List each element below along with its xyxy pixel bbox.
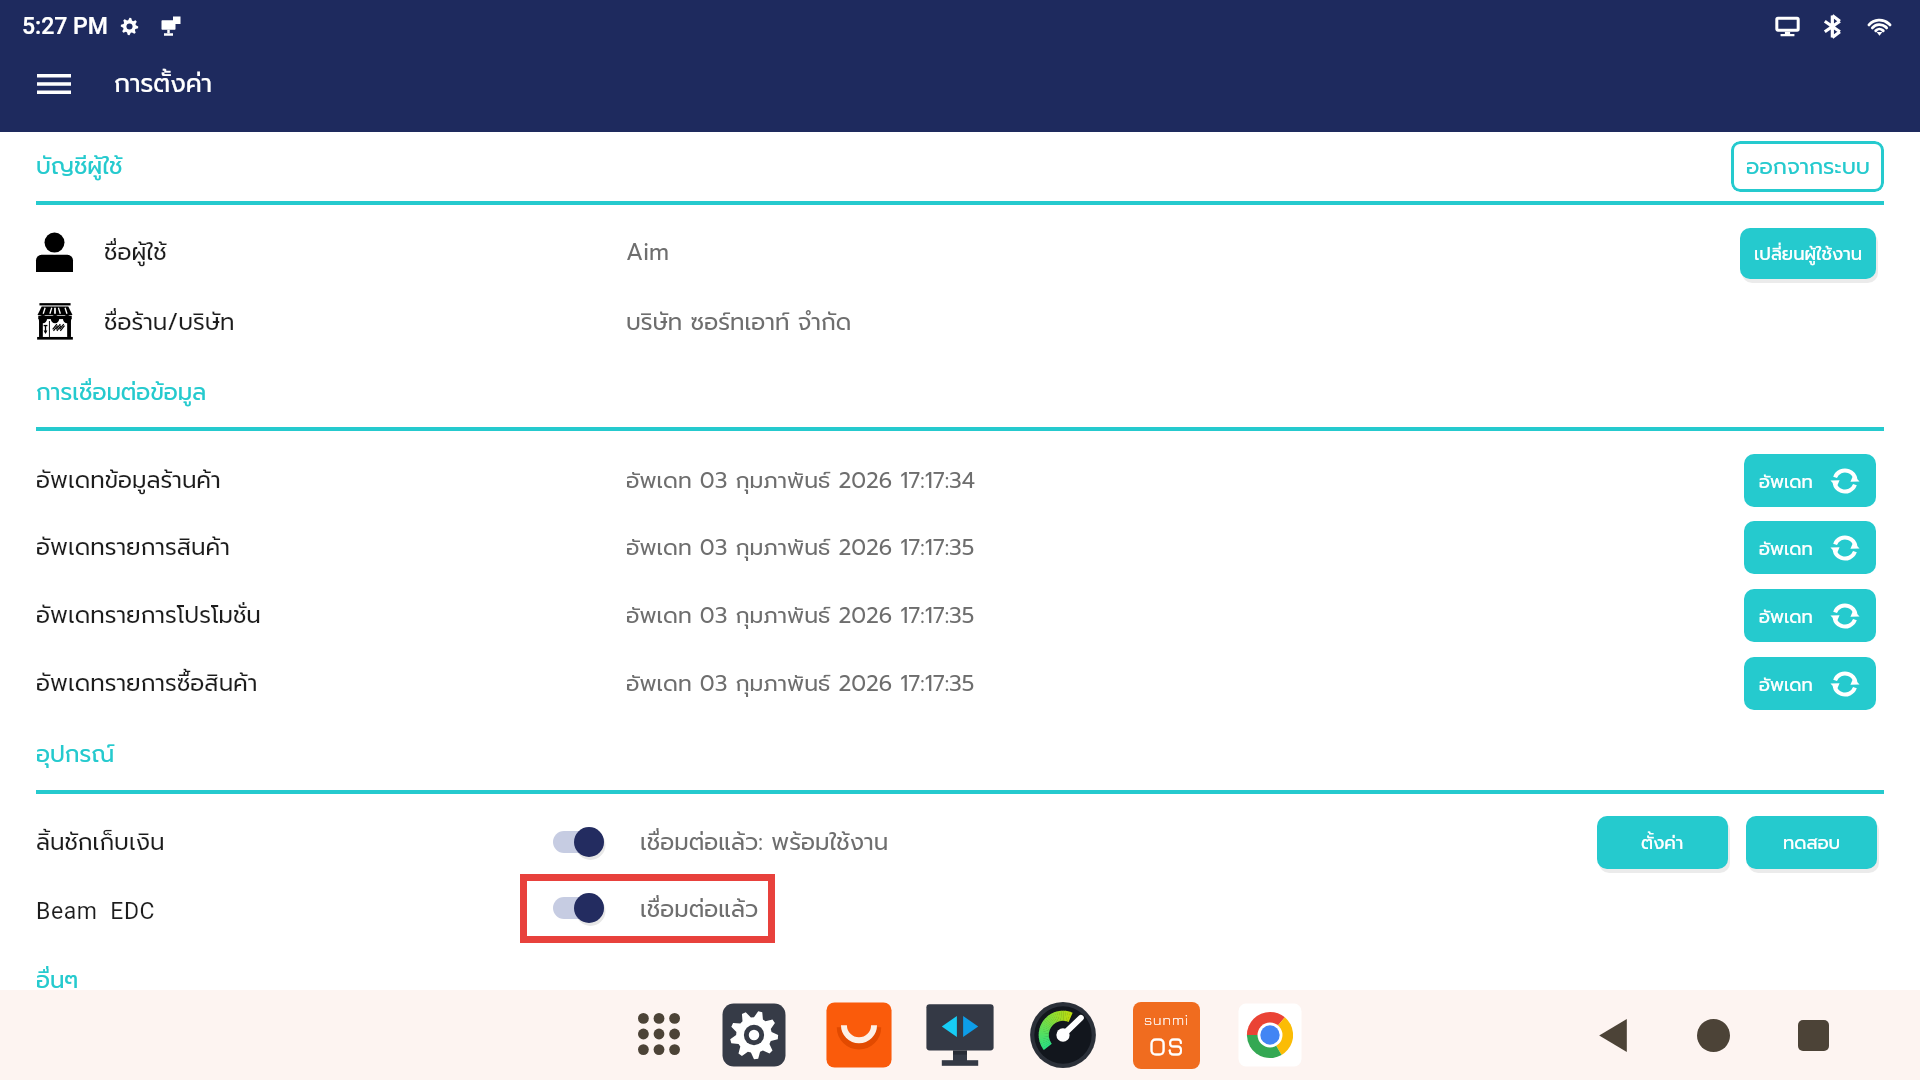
button[interactable]: Toggle Beam EDC bbox=[553, 891, 604, 925]
button[interactable] bbox=[36, 218, 1884, 286]
staticText: อัพเดทรายการซื้อสินค้า bbox=[36, 666, 258, 701]
button[interactable]: All apps bbox=[626, 1001, 692, 1067]
staticText: ชื่อร้าน/บริษัท bbox=[104, 305, 235, 340]
button[interactable] bbox=[36, 810, 1884, 874]
button[interactable]: ออกจากระบบ bbox=[1731, 141, 1884, 192]
staticText: บัญชีผู้ใช้ bbox=[36, 149, 123, 184]
button[interactable]: อัพเดท bbox=[1744, 454, 1876, 507]
button[interactable]: Chrome bbox=[1235, 1000, 1305, 1070]
staticText: ทดสอบ bbox=[1783, 829, 1841, 856]
button[interactable]: อัพเดท bbox=[1744, 657, 1876, 710]
button[interactable] bbox=[36, 447, 1884, 513]
staticText: Aim bbox=[626, 235, 669, 270]
staticText: อัพเดทข้อมูลร้านค้า bbox=[36, 463, 221, 498]
button[interactable]: ตั้งค่า bbox=[1597, 816, 1728, 869]
staticText: เปลี่ยนผู้ใช้งาน bbox=[1754, 240, 1863, 267]
button[interactable] bbox=[36, 879, 1884, 943]
button[interactable]: Toggle ลิ้นชักเก็บเงิน bbox=[553, 825, 604, 859]
staticText: อัพเดท bbox=[1759, 468, 1813, 495]
staticText: ลิ้นชักเก็บเงิน bbox=[36, 825, 165, 860]
button[interactable]: SunmiOS bbox=[1131, 1000, 1201, 1070]
staticText: OS bbox=[1149, 1031, 1185, 1061]
button[interactable]: Display bbox=[925, 1000, 995, 1070]
staticText: อัพเดทรายการสินค้า bbox=[36, 530, 230, 565]
button[interactable]: Recents bbox=[1780, 1002, 1846, 1068]
staticText: อื่นๆ bbox=[36, 963, 79, 998]
button[interactable]: อัพเดท bbox=[1744, 521, 1876, 574]
button[interactable]: Menu bbox=[20, 50, 88, 118]
staticText: เชื่อมต่อแล้ว bbox=[640, 892, 759, 927]
staticText: ออกจากระบบ bbox=[1746, 150, 1870, 183]
staticText: Beam EDC bbox=[36, 898, 156, 925]
staticText: การเชื่อมต่อข้อมูล bbox=[36, 375, 207, 410]
staticText: ตั้งค่า bbox=[1641, 829, 1684, 856]
staticText: อัพเดทรายการโปรโมชั่น bbox=[36, 598, 261, 633]
staticText: อัพเดท bbox=[1759, 603, 1813, 630]
button[interactable]: Store bbox=[824, 1000, 894, 1070]
staticText: อัพเดท 03 กุมภาพันธ์ 2026 17:17:35 bbox=[626, 599, 975, 632]
staticText: เชื่อมต่อแล้ว: พร้อมใช้งาน bbox=[640, 825, 889, 860]
staticText: อัพเดท 03 กุมภาพันธ์ 2026 17:17:35 bbox=[626, 667, 975, 700]
button[interactable] bbox=[36, 514, 1884, 580]
button[interactable]: Back bbox=[1580, 1002, 1646, 1068]
staticText: อัพเดท bbox=[1759, 671, 1813, 698]
staticText: บริษัท ซอร์ทเอาท์ จำกัด bbox=[626, 305, 852, 340]
staticText: ชื่อผู้ใช้ bbox=[104, 235, 167, 270]
button[interactable]: Speed test bbox=[1028, 1000, 1098, 1070]
button[interactable]: Settings bbox=[719, 1000, 789, 1070]
staticText: 5:27 PM bbox=[22, 13, 108, 40]
staticText: การตั้งค่า bbox=[114, 65, 213, 103]
button[interactable] bbox=[36, 650, 1884, 716]
staticText: อัพเดท bbox=[1759, 535, 1813, 562]
button[interactable] bbox=[36, 582, 1884, 648]
button[interactable] bbox=[36, 288, 1884, 356]
button[interactable]: ทดสอบ bbox=[1746, 816, 1877, 869]
button[interactable]: Home bbox=[1680, 1002, 1746, 1068]
button[interactable]: อัพเดท bbox=[1744, 589, 1876, 642]
button[interactable]: เปลี่ยนผู้ใช้งาน bbox=[1740, 228, 1876, 279]
staticText: sunmi bbox=[1144, 1011, 1189, 1029]
staticText: อุปกรณ์ bbox=[36, 737, 115, 772]
staticText: อัพเดท 03 กุมภาพันธ์ 2026 17:17:34 bbox=[626, 464, 975, 497]
staticText: อัพเดท 03 กุมภาพันธ์ 2026 17:17:35 bbox=[626, 531, 975, 564]
